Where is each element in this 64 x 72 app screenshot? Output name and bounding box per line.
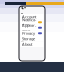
staticText: Notifications [22,17,36,27]
button[interactable]: Privacy [20,30,43,36]
staticText: Settings [21,0,27,46]
button[interactable]: About [20,41,43,47]
staticText: Account [22,14,36,19]
staticText: Appearance [22,22,36,33]
button[interactable]: Storage [20,36,43,41]
staticText: About [22,42,32,47]
staticText: Privacy [22,31,35,36]
staticText: Storage [22,36,35,41]
button[interactable]: Appearance [20,25,43,30]
button[interactable]: Notifications [20,19,43,25]
button[interactable]: Account [20,14,43,19]
